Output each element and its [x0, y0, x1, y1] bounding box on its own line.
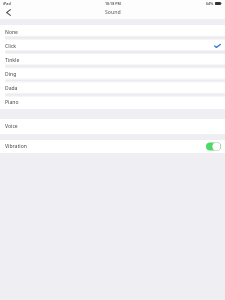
staticText: Dada: [5, 85, 18, 92]
button[interactable]: Vibration toggle, on: [206, 142, 221, 151]
button[interactable]: Voice: [0, 119, 225, 134]
staticText: Piano: [5, 99, 19, 106]
staticText: Voice: [5, 123, 18, 130]
button[interactable]: Dada: [0, 81, 225, 95]
staticText: 10:18 PM: [105, 1, 121, 6]
button[interactable]: Back: [2, 7, 14, 18]
staticText: Vibration: [5, 143, 27, 150]
button[interactable]: Piano: [0, 95, 225, 109]
staticText: Tinkle: [5, 57, 20, 64]
staticText: None: [5, 29, 18, 36]
button[interactable]: None: [0, 25, 225, 39]
staticText: Sound: [105, 8, 121, 15]
staticText: Ding: [5, 71, 17, 78]
button[interactable]: Click: [0, 39, 225, 53]
staticText: 64%: [206, 1, 214, 6]
staticText: Click: [5, 43, 17, 50]
button[interactable]: Tinkle: [0, 53, 225, 67]
button[interactable]: Vibration: [0, 140, 225, 153]
staticText: iPad: [3, 1, 11, 6]
button[interactable]: Ding: [0, 67, 225, 81]
